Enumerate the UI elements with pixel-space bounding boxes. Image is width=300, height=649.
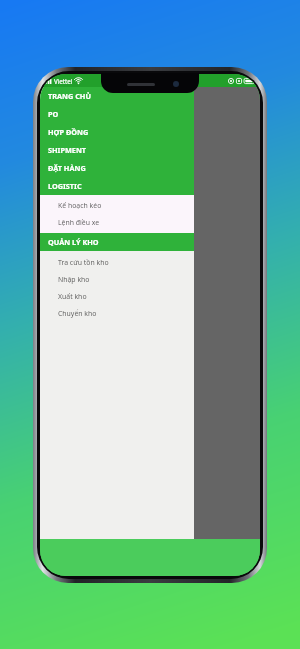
staticText: LOGISTIC <box>48 181 82 191</box>
staticText: QUẢN LÝ KHO <box>48 237 99 247</box>
button[interactable]: LOGISTIC <box>40 177 194 195</box>
staticText: Xuất kho <box>58 292 87 301</box>
button[interactable]: QUẢN LÝ KHO <box>40 233 194 251</box>
button[interactable]: HỢP ĐỒNG <box>40 123 194 141</box>
button[interactable]: Xuất kho <box>40 288 194 305</box>
staticText: Nhập kho <box>58 275 90 284</box>
staticText: Tra cứu tồn kho <box>58 258 109 267</box>
staticText: Viettel <box>54 77 73 85</box>
staticText: ĐẶT HÀNG <box>48 163 86 173</box>
button[interactable]: Lệnh điều xe <box>40 214 194 231</box>
button[interactable]: SHIPMENT <box>40 141 194 159</box>
button[interactable]: Nhập kho <box>40 271 194 288</box>
staticText: SHIPMENT <box>48 145 87 155</box>
staticText: Kế hoạch kéo <box>58 201 102 210</box>
staticText: Lệnh điều xe <box>58 218 100 227</box>
button[interactable]: TRANG CHỦ <box>40 87 194 105</box>
staticText: Chuyển kho <box>58 309 97 318</box>
staticText: TRANG CHỦ <box>48 91 91 101</box>
staticText: HỢP ĐỒNG <box>48 127 89 137</box>
staticText: 14:30 <box>141 76 159 85</box>
button[interactable]: PO <box>40 105 194 123</box>
button[interactable]: ĐẶT HÀNG <box>40 159 194 177</box>
button[interactable]: Tra cứu tồn kho <box>40 254 194 271</box>
button[interactable]: Chuyển kho <box>40 305 194 322</box>
staticText: PO <box>48 109 59 119</box>
button[interactable]: Kế hoạch kéo <box>40 197 194 214</box>
